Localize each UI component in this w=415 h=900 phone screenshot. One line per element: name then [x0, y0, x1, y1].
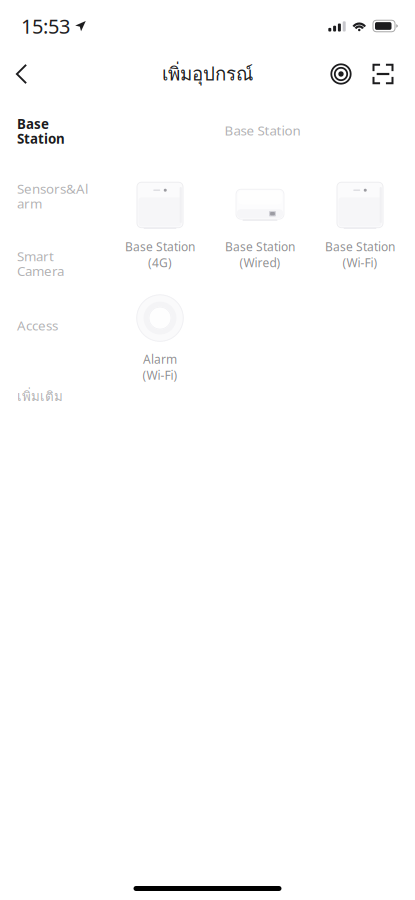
button[interactable]: Base Station [210, 180, 310, 273]
staticText: Base [17, 115, 49, 133]
staticText: (4G) [148, 255, 172, 270]
staticText: (Wired) [239, 255, 280, 270]
button[interactable]: Access [0, 316, 110, 386]
button[interactable]: Smart [0, 247, 110, 316]
staticText: Access [17, 316, 58, 334]
staticText: Smart [17, 247, 54, 265]
staticText: Sensors&Al [17, 180, 88, 197]
button[interactable]: Alarm [110, 293, 210, 385]
staticText: Camera [17, 262, 64, 280]
button[interactable]: Base [0, 115, 110, 180]
staticText: Station [17, 130, 65, 147]
staticText: (Wi-Fi) [142, 367, 177, 383]
button[interactable]: Scan QR code [362, 52, 404, 96]
staticText: Base Station [225, 239, 295, 255]
staticText: arm [17, 194, 42, 212]
staticText: (Wi-Fi) [342, 255, 377, 270]
staticText: เพิ่มเติม [17, 386, 63, 407]
button[interactable]: Find nearby devices [320, 52, 362, 96]
staticText: 15:53 [21, 13, 70, 39]
button[interactable]: Base Station [310, 180, 410, 273]
staticText: Base Station [325, 239, 395, 255]
staticText: Base Station [125, 239, 195, 255]
button[interactable]: Back [0, 52, 54, 96]
staticText: เพิ่มอุปกรณ์ [162, 59, 253, 88]
staticText: Base Station [224, 121, 300, 139]
staticText: Alarm [143, 351, 177, 367]
button[interactable]: เพิ่มเติม [0, 386, 110, 426]
button[interactable]: Base Station [110, 180, 210, 273]
button[interactable]: Sensors&Al [0, 180, 110, 247]
